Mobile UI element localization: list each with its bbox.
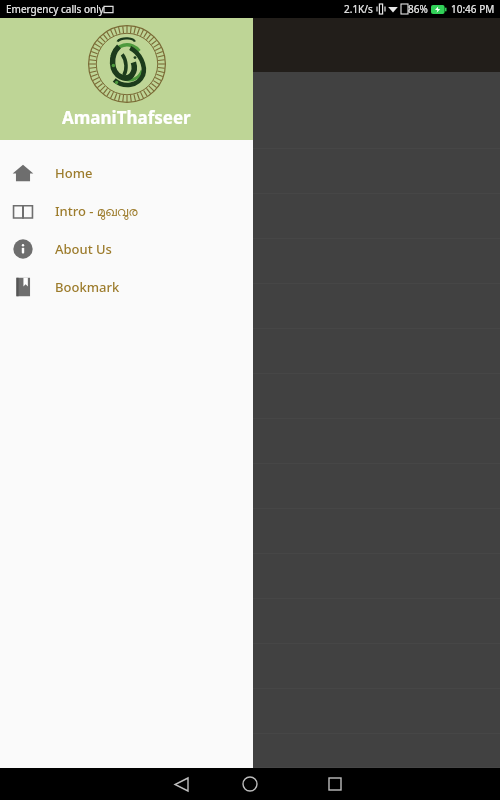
- button[interactable]: [0, 734, 500, 768]
- staticText: 86%: [408, 2, 428, 16]
- staticText: Intro - മുഖവുര: [55, 202, 138, 220]
- button[interactable]: [0, 239, 500, 284]
- button[interactable]: [0, 149, 500, 194]
- staticText: About Us: [55, 240, 112, 258]
- staticText: Bookmark: [55, 278, 120, 296]
- button[interactable]: [0, 329, 500, 374]
- button[interactable]: [0, 599, 500, 644]
- button[interactable]: Back: [168, 771, 194, 797]
- button[interactable]: [0, 509, 500, 554]
- button[interactable]: [0, 419, 500, 464]
- button[interactable]: Home: [0, 154, 253, 192]
- button[interactable]: Bookmark: [0, 268, 253, 306]
- button[interactable]: [0, 104, 500, 149]
- button[interactable]: [0, 284, 500, 329]
- button[interactable]: [0, 194, 500, 239]
- button[interactable]: Intro - മുഖവുര: [0, 192, 253, 230]
- staticText: 2.1K/s: [344, 2, 373, 16]
- button[interactable]: [0, 374, 500, 419]
- button[interactable]: About Us: [0, 230, 253, 268]
- button[interactable]: Home: [237, 771, 263, 797]
- staticText: Emergency calls only: [6, 2, 104, 16]
- button[interactable]: Recent apps: [322, 771, 348, 797]
- button[interactable]: [0, 644, 500, 689]
- staticText: AmaniThafseer: [62, 106, 191, 129]
- button[interactable]: [0, 464, 500, 509]
- button[interactable]: JUZ: [140, 74, 240, 100]
- button[interactable]: [0, 554, 500, 599]
- staticText: Home: [55, 164, 93, 182]
- staticText: 10:46 PM: [451, 2, 495, 16]
- button[interactable]: [0, 689, 500, 734]
